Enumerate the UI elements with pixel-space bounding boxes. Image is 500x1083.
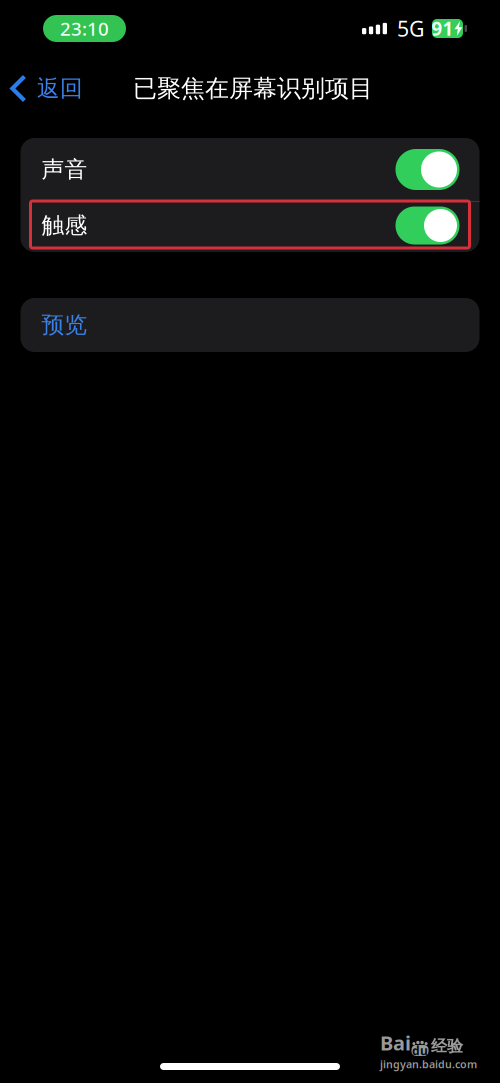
staticText: 91 (431, 16, 453, 41)
staticText: 预览 (41, 311, 87, 339)
staticText: Bai (380, 1029, 411, 1056)
button[interactable]: 开 (395, 206, 459, 244)
staticText: 已聚焦在屏幕识别项目 (133, 74, 373, 103)
staticText: 5G (397, 14, 425, 43)
button[interactable]: 返回 (0, 57, 95, 115)
button[interactable]: 开 (395, 149, 459, 190)
staticText: 经验 (431, 1036, 463, 1056)
button[interactable]: 声音 (20, 138, 479, 201)
staticText: 声音 (41, 156, 87, 183)
staticText: jingyan.baidu.com (380, 1057, 477, 1071)
staticText: du (412, 1042, 428, 1058)
staticText: 返回 (37, 75, 83, 102)
staticText: 触感 (41, 212, 87, 239)
staticText: 23:10 (60, 16, 109, 41)
button[interactable]: 预览 (20, 298, 479, 352)
button[interactable]: 触感 (20, 202, 479, 252)
